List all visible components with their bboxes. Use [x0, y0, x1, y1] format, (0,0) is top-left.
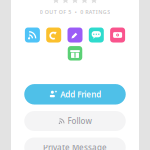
staticText: 0 OUT OF 5 • 0 RATINGS	[40, 8, 110, 16]
button[interactable]: Follow	[24, 111, 126, 131]
button[interactable]: Send a gift	[68, 46, 82, 60]
staticText: Private Message	[43, 142, 107, 150]
button[interactable]: Private Message	[24, 137, 126, 150]
button[interactable]: Add Friend	[24, 84, 126, 104]
button[interactable]: RSS feed	[25, 27, 40, 42]
staticText: Follow	[67, 116, 91, 126]
button[interactable]: Sticker	[110, 27, 125, 42]
staticText: Add Friend	[60, 89, 101, 100]
button[interactable]: Message	[89, 27, 104, 42]
button[interactable]: Edit	[67, 27, 82, 42]
button[interactable]: Refresh	[46, 27, 61, 42]
